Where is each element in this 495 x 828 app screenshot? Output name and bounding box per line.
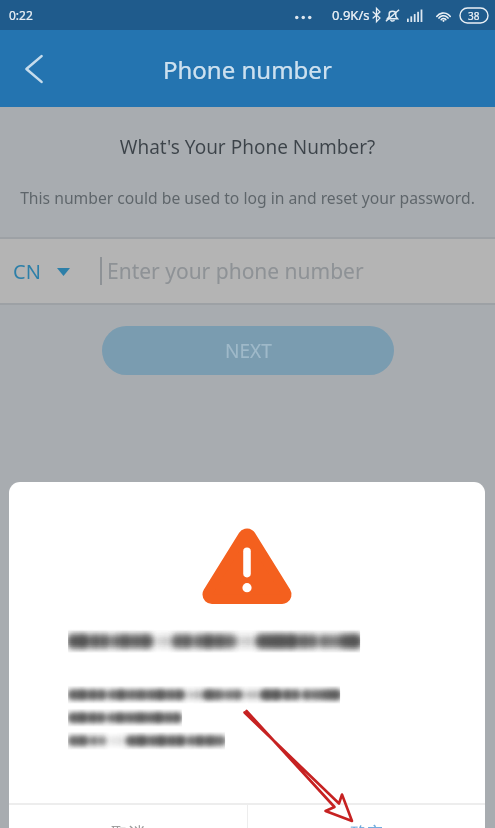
staticText: This number could be used to log in and … xyxy=(0,187,495,208)
staticText: NEXT xyxy=(225,338,272,364)
staticText: 确定 xyxy=(350,823,384,828)
button[interactable]: 确定 xyxy=(248,805,485,828)
button[interactable]: 取消 xyxy=(9,805,247,828)
button[interactable]: CN xyxy=(0,239,495,303)
staticText: 0:22 xyxy=(9,7,33,23)
button[interactable]: NEXT xyxy=(102,326,394,375)
staticText: 38 xyxy=(468,9,480,23)
staticText: Phone number xyxy=(163,53,332,86)
staticText: What's Your Phone Number? xyxy=(0,134,495,160)
staticText: 取消 xyxy=(111,823,145,828)
button[interactable]: Back xyxy=(6,41,62,97)
staticText: CN xyxy=(13,258,41,285)
staticText: 0.9K/s xyxy=(332,6,370,24)
staticText: Enter your phone number xyxy=(107,257,364,286)
